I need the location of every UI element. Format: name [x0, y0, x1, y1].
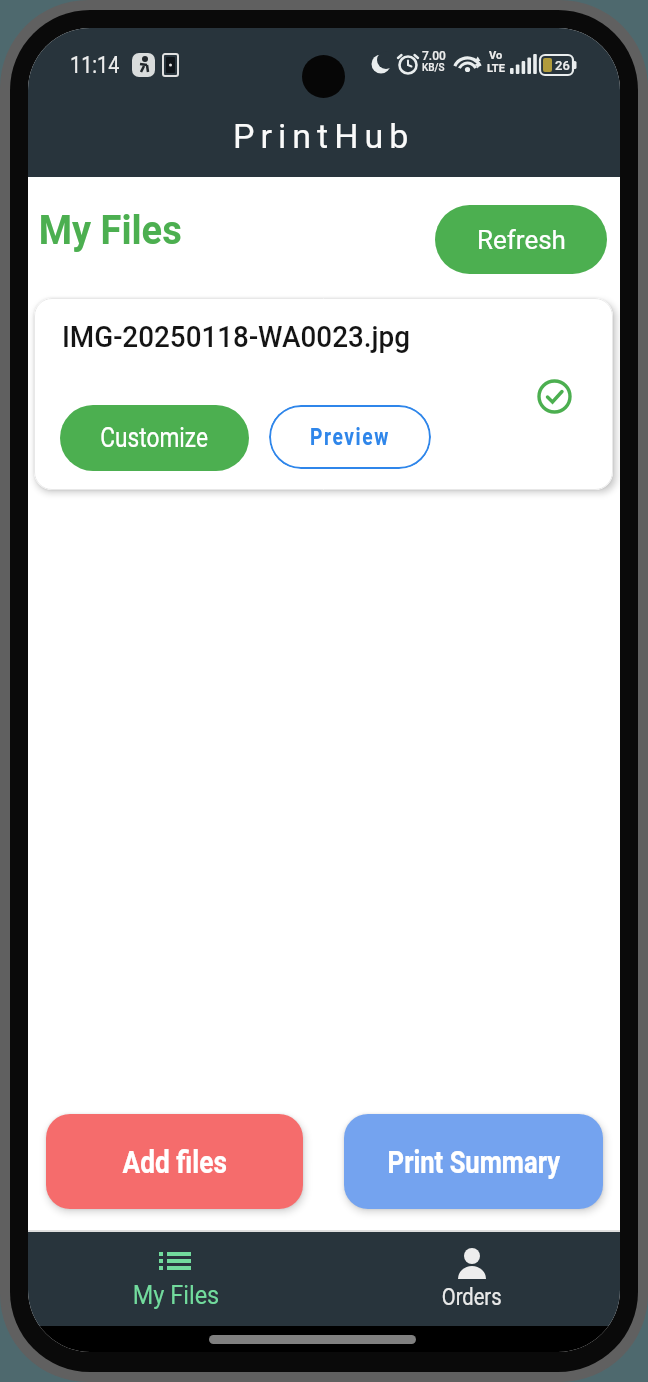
staticText: My Files: [133, 1281, 219, 1310]
staticText: 11:14: [70, 52, 120, 79]
staticText: Preview: [310, 423, 390, 451]
staticText: Refresh: [477, 225, 566, 255]
staticText: 7.00: [422, 49, 446, 63]
staticText: IMG-20250118-WA0023.jpg: [62, 320, 410, 354]
staticText: PrintHub: [233, 116, 415, 156]
staticText: Customize: [100, 422, 209, 454]
staticText: KB/S: [422, 62, 445, 74]
staticText: My Files: [39, 207, 182, 254]
staticText: Orders: [442, 1283, 502, 1311]
staticText: 26: [555, 58, 570, 73]
staticText: Add files: [122, 1143, 227, 1181]
staticText: LTE: [487, 62, 505, 75]
staticText: Vo: [489, 49, 503, 62]
staticText: Print Summary: [388, 1143, 560, 1181]
